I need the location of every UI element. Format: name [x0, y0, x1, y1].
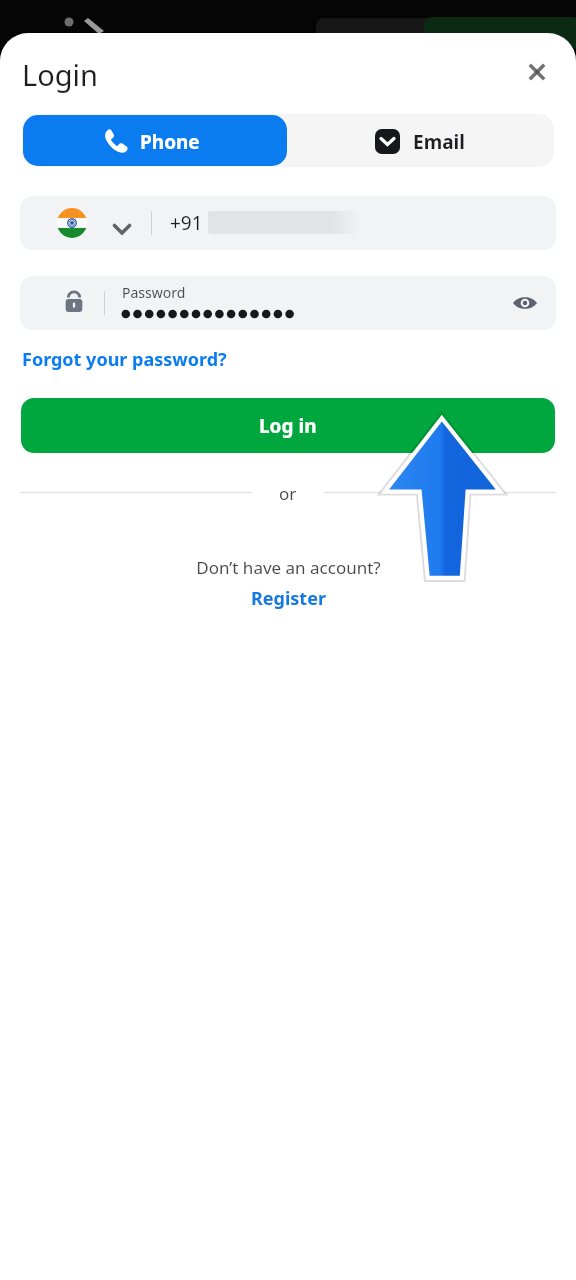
staticText: Register [251, 586, 326, 611]
button[interactable]: Register [218, 583, 358, 613]
staticText: +91 [170, 210, 203, 236]
button[interactable]: Email [290, 115, 554, 166]
staticText: Forgot your password? [22, 347, 227, 372]
button[interactable]: Select country code [20, 196, 556, 250]
button[interactable]: Show password [504, 282, 546, 324]
button[interactable]: Phone [23, 115, 287, 166]
staticText: or [279, 482, 297, 505]
button[interactable]: Forgot your password? [14, 342, 248, 376]
staticText: Phone [140, 129, 200, 155]
other: Select country code [108, 215, 136, 243]
button[interactable]: Log in [21, 398, 555, 453]
staticText: Email [413, 129, 465, 155]
staticText: Don’t have an account? [196, 556, 381, 579]
button[interactable]: Close [513, 48, 561, 96]
button[interactable]: Password [20, 276, 556, 330]
staticText: Password [122, 283, 186, 302]
staticText: Login [22, 55, 98, 94]
staticText: Log in [259, 413, 317, 439]
